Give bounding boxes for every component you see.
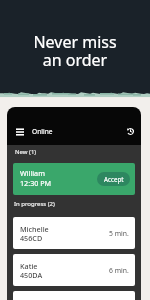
staticText: Katie <box>20 261 38 271</box>
staticText: Michelle <box>20 224 49 234</box>
staticText: In progress (2) <box>14 200 55 208</box>
staticText: 450DA <box>20 270 43 280</box>
button[interactable]: Katie <box>13 254 135 286</box>
staticText: 12:30 PM <box>20 178 52 188</box>
staticText: 6 min. <box>109 266 129 275</box>
staticText: New (1) <box>15 148 37 156</box>
button[interactable]: Order history <box>127 128 134 135</box>
button[interactable] <box>13 291 135 300</box>
staticText: 456CD <box>20 233 43 243</box>
button[interactable]: Menu <box>16 128 24 136</box>
staticText: Online <box>32 127 53 136</box>
button[interactable]: Michelle <box>13 217 135 249</box>
staticText: Accept <box>104 175 124 183</box>
button[interactable]: Accept <box>97 172 130 186</box>
staticText: William <box>20 168 45 178</box>
staticText: 5 min. <box>109 229 129 238</box>
button[interactable]: William <box>13 163 135 195</box>
staticText: Never miss an order <box>0 31 150 70</box>
